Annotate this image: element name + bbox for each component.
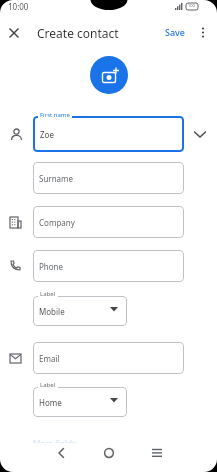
button[interactable] <box>90 56 128 94</box>
staticText: Phone <box>39 261 64 272</box>
staticText: Surname <box>39 173 74 184</box>
staticText: 10:00 <box>8 1 29 12</box>
button[interactable]: Zoe <box>33 116 184 152</box>
button[interactable] <box>6 25 22 41</box>
staticText: First name <box>40 111 70 119</box>
button[interactable]: Email <box>33 342 184 374</box>
button[interactable] <box>190 124 210 144</box>
button[interactable]: Phone <box>33 250 184 282</box>
staticText: Label <box>40 290 56 298</box>
staticText: 100 <box>188 3 195 8</box>
staticText: Zoe <box>40 129 54 140</box>
button[interactable] <box>100 444 118 462</box>
button[interactable] <box>197 25 209 41</box>
staticText: More fields <box>33 438 76 449</box>
staticText: Email <box>39 353 60 364</box>
staticText: Company <box>39 217 75 228</box>
button[interactable]: Company <box>33 206 184 238</box>
staticText: Mobile <box>39 306 65 317</box>
button[interactable]: Home <box>33 387 127 417</box>
staticText: Create contact <box>37 25 119 41</box>
button[interactable]: Mobile <box>33 296 127 326</box>
staticText: Save <box>165 26 186 38</box>
button[interactable] <box>52 444 70 462</box>
button[interactable]: Surname <box>33 162 184 194</box>
button[interactable]: Save <box>160 24 190 40</box>
button[interactable] <box>148 444 166 462</box>
staticText: Label <box>40 381 56 389</box>
staticText: Home <box>39 397 62 408</box>
